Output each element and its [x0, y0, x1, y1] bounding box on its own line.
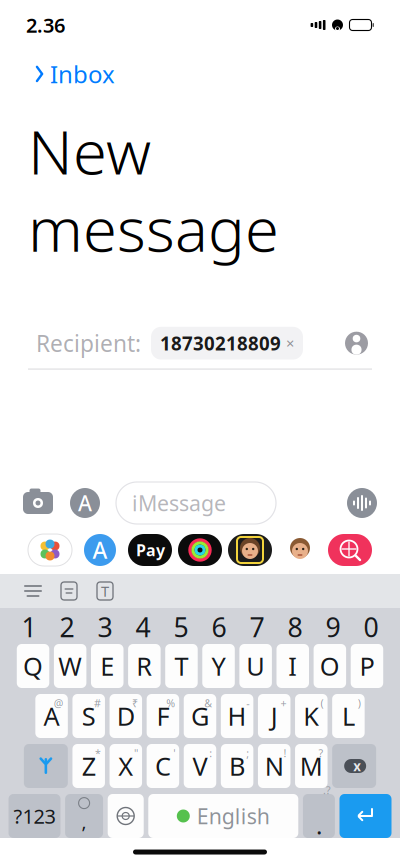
staticText: Recipient:	[36, 328, 141, 358]
button[interactable]: 3	[86, 612, 124, 642]
staticText: T	[174, 649, 188, 683]
staticText: ;	[246, 746, 249, 760]
button[interactable]: 1	[10, 612, 48, 642]
button[interactable]: *	[72, 744, 105, 788]
button[interactable]: English	[148, 794, 298, 838]
staticText: K	[303, 699, 319, 733]
staticText: %	[166, 696, 175, 710]
staticText: '	[173, 746, 175, 760]
staticText: F	[156, 699, 169, 733]
staticText: R	[136, 649, 152, 683]
staticText: 2.36	[26, 12, 65, 38]
button[interactable]: &	[184, 694, 216, 738]
button[interactable]: Return	[339, 794, 391, 838]
button[interactable]: P	[351, 644, 383, 688]
staticText: )	[358, 696, 361, 710]
staticText: ?	[318, 746, 323, 760]
button[interactable]: Inbox	[28, 52, 121, 96]
button[interactable]: Text formatting	[94, 581, 116, 601]
button[interactable]: E	[91, 644, 123, 688]
button[interactable]: Fitness	[177, 533, 223, 567]
button[interactable]: -	[221, 694, 253, 738]
button[interactable]: :	[184, 744, 216, 788]
button[interactable]: iMessage	[116, 482, 276, 524]
staticText: 1	[21, 609, 36, 645]
button[interactable]: 6	[200, 612, 238, 642]
staticText: 5	[173, 609, 188, 645]
button[interactable]: 7	[238, 612, 276, 642]
button[interactable]: Shift	[24, 744, 68, 788]
button[interactable]: R	[128, 644, 161, 688]
button[interactable]: +	[258, 694, 290, 738]
button[interactable]: Apps	[70, 488, 100, 518]
button[interactable]: "	[109, 744, 142, 788]
staticText: +	[280, 696, 286, 710]
button[interactable]: #	[72, 694, 105, 738]
staticText: !	[283, 746, 286, 760]
button[interactable]: I	[276, 644, 309, 688]
button[interactable]: !	[258, 744, 290, 788]
button[interactable]: Camera	[22, 489, 54, 517]
staticText: :	[209, 746, 212, 760]
staticText: 7	[249, 609, 264, 645]
staticText: J	[271, 699, 278, 733]
button[interactable]: ₹	[109, 694, 142, 738]
staticText: Q	[23, 649, 43, 683]
staticText: .	[316, 809, 322, 841]
button[interactable]: Memoji	[227, 533, 273, 567]
button[interactable]: 9	[314, 612, 352, 642]
staticText: English	[197, 802, 270, 830]
button[interactable]: Emoji and comma	[65, 794, 103, 838]
button[interactable]: U	[239, 644, 272, 688]
button[interactable]: Suggestions	[22, 581, 44, 601]
staticText: 4	[135, 609, 150, 645]
button[interactable]: 5	[162, 612, 200, 642]
staticText: X	[118, 749, 133, 783]
button[interactable]: Switch keyboard	[108, 794, 144, 838]
button[interactable]: (	[295, 694, 327, 738]
button[interactable]: @	[35, 694, 68, 738]
button[interactable]: W	[54, 644, 86, 688]
button[interactable]: App Store	[77, 533, 123, 567]
staticText: -	[246, 696, 249, 710]
button[interactable]: Delete	[332, 744, 376, 788]
staticText: C	[155, 749, 171, 783]
button[interactable]: Add contact	[345, 332, 368, 355]
staticText: I	[288, 649, 297, 683]
button[interactable]: Memoji stickers	[277, 533, 323, 567]
button[interactable]: Images	[327, 533, 373, 567]
staticText: @	[54, 696, 64, 710]
button[interactable]: T	[165, 644, 198, 688]
staticText: L	[342, 699, 355, 733]
button[interactable]: '	[147, 744, 179, 788]
staticText: G	[191, 699, 209, 733]
button[interactable]: Clipboard	[58, 581, 80, 601]
button[interactable]: Record audio	[346, 487, 378, 519]
staticText: M	[300, 749, 323, 783]
button[interactable]: Q	[17, 644, 49, 688]
staticText: B	[229, 749, 245, 783]
staticText: Pay	[136, 539, 165, 561]
button[interactable]: 18730218809	[151, 327, 303, 360]
staticText: 9	[325, 609, 340, 645]
staticText: A	[44, 699, 60, 733]
button[interactable]: ?	[295, 744, 327, 788]
button[interactable]: 0	[352, 612, 390, 642]
button[interactable]: 4	[124, 612, 162, 642]
button[interactable]: ;	[221, 744, 253, 788]
button[interactable]: Apple Pay	[127, 533, 173, 567]
staticText: ₹	[132, 696, 138, 710]
staticText: 3	[97, 609, 112, 645]
button[interactable]: 2	[48, 612, 86, 642]
button[interactable]: ?123	[8, 794, 60, 838]
button[interactable]: 8	[276, 612, 314, 642]
button[interactable]: %	[147, 694, 179, 738]
button[interactable]: Period	[303, 794, 335, 838]
staticText: ,	[82, 810, 87, 834]
button[interactable]: Y	[202, 644, 235, 688]
staticText: 6	[211, 609, 226, 645]
button[interactable]: Photos	[27, 533, 73, 567]
button[interactable]: O	[314, 644, 346, 688]
staticText: 2	[59, 609, 74, 645]
button[interactable]: )	[332, 694, 365, 738]
